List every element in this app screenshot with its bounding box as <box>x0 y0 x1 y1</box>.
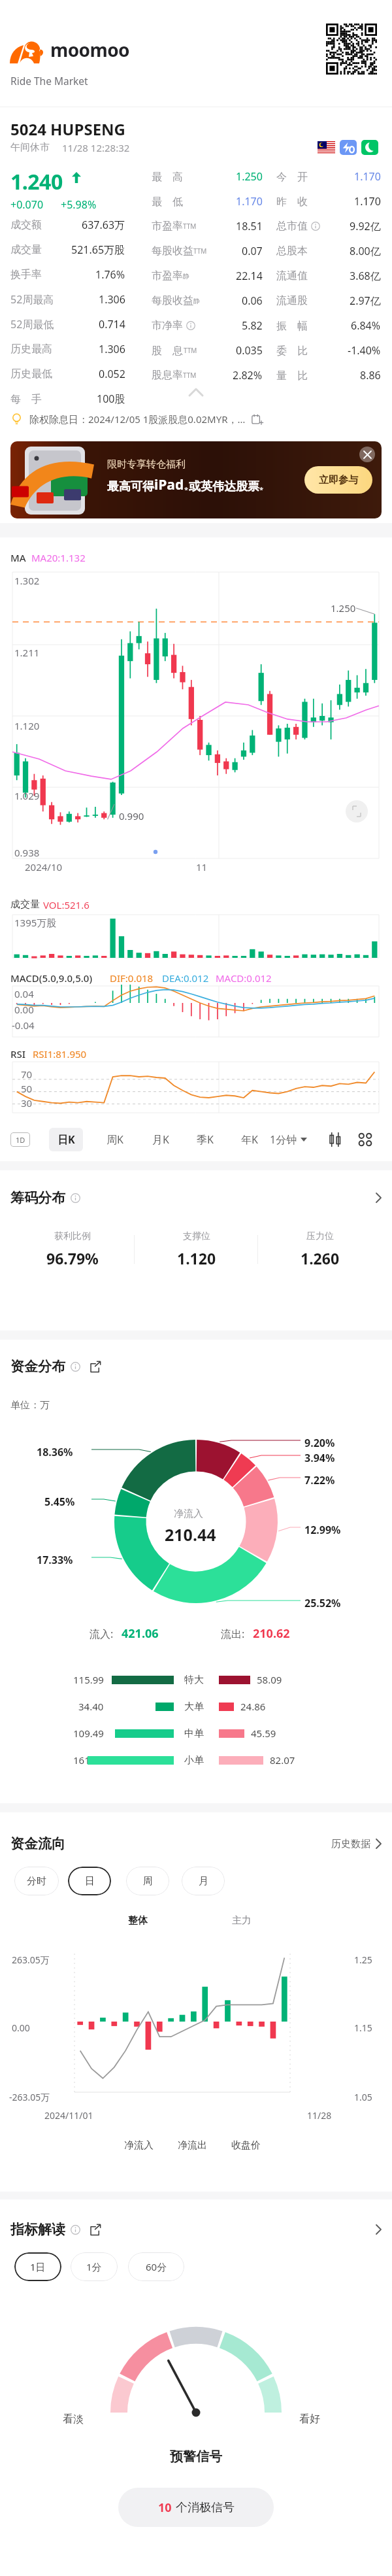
staticText: 1.306 <box>99 342 125 356</box>
button[interactable]: More indicators <box>358 1132 372 1147</box>
button[interactable]: 资金流向 <box>10 1831 382 1857</box>
staticText: 8.00亿 <box>350 244 381 258</box>
button[interactable]: 60分 <box>128 2252 184 2281</box>
staticText: 2.97亿 <box>350 294 381 308</box>
staticText: 1.306 <box>99 292 125 307</box>
staticText: 1.240 <box>10 167 63 196</box>
staticText: 历史最高 <box>10 343 52 356</box>
staticText: 7.22% <box>304 1473 335 1487</box>
staticText: 25.52% <box>304 1596 341 1610</box>
button[interactable]: 月 <box>182 1867 225 1895</box>
staticText: MA20:1.132 <box>31 551 86 564</box>
staticText: 1.170 <box>354 194 381 209</box>
staticText: TTM <box>184 346 197 355</box>
button[interactable]: 10 <box>118 2488 274 2527</box>
staticText: 静 <box>183 272 189 280</box>
staticText: 5024 <box>10 118 46 140</box>
staticText: 股息率 <box>152 369 183 382</box>
staticText: 9.20% <box>304 1436 335 1450</box>
button[interactable]: 获利比例 <box>10 1225 135 1274</box>
button[interactable]: 筹码分布 <box>10 1185 382 1211</box>
staticText: TTM <box>193 246 207 256</box>
staticText: DIF:0.018 <box>110 972 154 985</box>
button[interactable]: 支撑位 <box>135 1225 258 1274</box>
staticText: 静 <box>193 297 200 305</box>
staticText: 17.33% <box>37 1553 73 1567</box>
staticText: 最 低 <box>152 194 184 209</box>
button[interactable]: Alerts <box>340 140 357 155</box>
staticText: 637.63万 <box>82 218 125 232</box>
staticText: 1日 <box>30 2260 46 2273</box>
staticText: 18.36% <box>37 1445 73 1459</box>
button[interactable]: 分时 <box>14 1867 59 1895</box>
staticText: 2024/11/01 <box>44 2109 93 2122</box>
staticText: 总市值 <box>276 220 308 233</box>
staticText: 1.15 <box>354 2022 372 2034</box>
staticText: iPad <box>154 475 184 494</box>
button[interactable]: 立即参与 <box>304 466 372 494</box>
staticText: 1.302 <box>14 574 40 587</box>
staticText: 量 比 <box>276 368 308 382</box>
staticText: 除权除息日：2024/12/05 1股派股息0.02MYR，… <box>29 413 246 426</box>
staticText: 2.82% <box>233 368 263 382</box>
button[interactable]: Chart style <box>328 1132 342 1147</box>
button[interactable]: 资金分布 <box>10 1353 382 1380</box>
staticText: 换手率 <box>10 268 42 281</box>
staticText: 11/28 12:28:32 <box>62 141 130 154</box>
button[interactable]: Share <box>90 2224 101 2235</box>
staticText: 1.25 <box>354 1954 372 1966</box>
staticText: 8.86 <box>360 368 381 382</box>
staticText: HUPSENG <box>50 118 125 140</box>
staticText: 看好 <box>299 2413 320 2426</box>
staticText: -263.05万 <box>9 2091 50 2103</box>
staticText: 11 <box>196 860 208 873</box>
staticText: 成交量 <box>10 243 42 256</box>
staticText: 最 高 <box>152 169 184 184</box>
button[interactable]: 限时专享转仓福利 <box>10 441 382 518</box>
staticText: 压力位 <box>306 1230 334 1242</box>
button[interactable]: 1分 <box>71 2252 118 2281</box>
staticText: 210.62 <box>253 1625 290 1642</box>
button[interactable]: Close <box>359 447 375 462</box>
button[interactable]: 压力位 <box>258 1225 382 1274</box>
button[interactable]: 季K <box>189 1128 221 1151</box>
staticText: 0.938 <box>14 846 40 859</box>
staticText: 5.45% <box>44 1495 75 1509</box>
staticText: 月 <box>199 1875 208 1888</box>
staticText: 季K <box>197 1132 214 1147</box>
button[interactable]: After hours <box>361 140 378 155</box>
staticText: 单位：万 <box>10 1399 50 1412</box>
staticText: 每股收益 <box>152 245 193 258</box>
staticText: 每股收益 <box>152 294 193 307</box>
button[interactable]: 1分钟 <box>270 1128 307 1151</box>
staticText: 0.06 <box>242 294 263 308</box>
staticText: 日K <box>57 1132 75 1147</box>
staticText: 22.14 <box>236 269 263 283</box>
staticText: 5.82 <box>242 318 263 333</box>
staticText: TTM <box>183 222 197 231</box>
button[interactable]: 指标解读 <box>10 2216 382 2243</box>
button[interactable]: 日K <box>49 1128 83 1151</box>
staticText: 11/28 <box>307 2109 332 2122</box>
staticText: 限时专享转仓福利 <box>107 458 186 471</box>
staticText: 421.06 <box>122 1625 159 1642</box>
staticText: 1.170 <box>354 169 381 184</box>
button[interactable]: Share <box>90 1361 101 1372</box>
button[interactable]: 日 <box>68 1867 111 1895</box>
button[interactable]: 除权除息日：2024/12/05 1股派股息0.02MYR，… <box>10 400 382 438</box>
button[interactable]: 周K <box>99 1128 131 1151</box>
button[interactable]: 1日 <box>14 2252 61 2281</box>
staticText: 最高可得 <box>107 479 154 494</box>
staticText: 立即参与 <box>319 474 358 486</box>
staticText: 指标解读 <box>10 2221 65 2238</box>
staticText: 日 <box>85 1875 95 1888</box>
button[interactable]: 年K <box>234 1128 265 1151</box>
staticText: RSI1:81.950 <box>33 1047 87 1060</box>
staticText: 振 幅 <box>276 318 308 333</box>
button[interactable]: 月K <box>145 1128 176 1151</box>
button[interactable]: 周 <box>126 1867 169 1895</box>
button[interactable]: 1D <box>10 1132 30 1147</box>
staticText: 210.44 <box>165 1523 216 1546</box>
staticText: -0.04 <box>12 1019 35 1032</box>
staticText: 主力 <box>232 1914 252 1927</box>
